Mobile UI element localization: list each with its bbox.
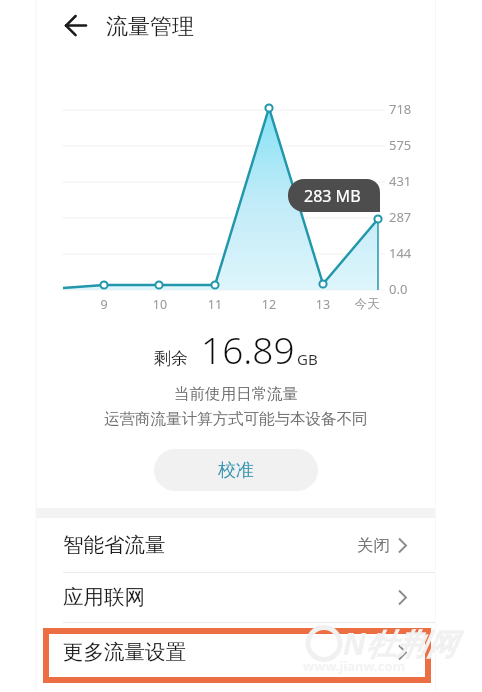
button[interactable]: 智能省流量	[36, 518, 435, 572]
staticText: 校准	[218, 459, 254, 482]
staticText: www.jianw.com	[303, 657, 406, 675]
button[interactable]: 校准	[154, 449, 318, 491]
staticText: 应用联网	[63, 584, 145, 610]
staticText: 144	[389, 244, 412, 262]
staticText: 10	[138, 296, 182, 313]
staticText: 运营商流量计算方式可能与本设备不同	[104, 409, 368, 429]
staticText: 16.89	[201, 324, 295, 374]
staticText: 剩余	[154, 348, 188, 369]
staticText: 575	[389, 136, 412, 154]
staticText: 13	[301, 296, 345, 313]
staticText: 431	[389, 172, 412, 190]
button[interactable]: Back	[54, 4, 98, 48]
staticText: 12	[247, 296, 291, 313]
staticText: 718	[389, 100, 412, 118]
staticText: 287	[389, 208, 412, 226]
staticText: 关闭	[357, 535, 390, 556]
staticText: 当前使用日常流量	[174, 384, 298, 404]
staticText: 智能省流量	[63, 532, 166, 558]
staticText: N牡荆网	[343, 623, 456, 664]
staticText: 0.0	[389, 280, 408, 298]
staticText: 9	[82, 296, 126, 313]
button[interactable]: 更多流量设置	[36, 622, 435, 682]
staticText: 11	[193, 296, 237, 313]
staticText: 283 MB	[304, 185, 361, 207]
staticText: 流量管理	[106, 13, 194, 41]
button[interactable]: 应用联网	[36, 572, 435, 622]
staticText: 更多流量设置	[63, 639, 186, 665]
staticText: 今天	[345, 296, 389, 312]
staticText: GB	[297, 349, 318, 369]
